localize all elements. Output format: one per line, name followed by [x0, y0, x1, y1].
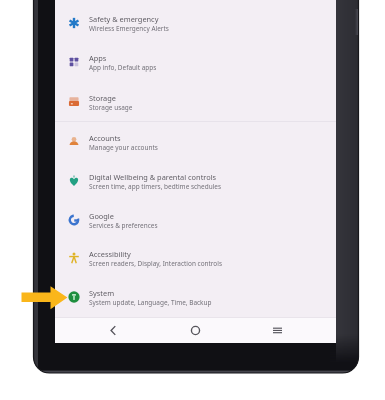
- staticText: Safety & emergency: [89, 14, 159, 24]
- staticText: App info, Default apps: [89, 63, 157, 72]
- staticText: Apps: [89, 53, 107, 63]
- staticText: System: [89, 288, 115, 298]
- staticText: Wireless Emergency Alerts: [89, 24, 169, 33]
- button[interactable]: Apps: [55, 43, 336, 82]
- staticText: Services & preferences: [89, 221, 158, 230]
- staticText: Accounts: [89, 133, 121, 143]
- staticText: Google: [89, 211, 114, 221]
- button[interactable]: Accessibility: [55, 239, 336, 278]
- staticText: Storage: [89, 93, 116, 103]
- staticText: System update, Language, Time, Backup: [89, 298, 212, 307]
- staticText: Digital Wellbeing & parental controls: [89, 172, 217, 182]
- staticText: Accessibility: [89, 249, 131, 259]
- button[interactable]: System: [55, 278, 336, 317]
- button[interactable]: Back: [73, 317, 154, 343]
- staticText: Screen time, app timers, bedtime schedul…: [89, 182, 222, 191]
- button[interactable]: Digital Wellbeing & parental controls: [55, 162, 336, 201]
- button[interactable]: Safety & emergency: [55, 4, 336, 43]
- button[interactable]: Recent apps: [236, 317, 318, 343]
- staticText: Manage your accounts: [89, 143, 158, 152]
- button[interactable]: Google: [55, 201, 336, 240]
- staticText: Screen readers, Display, Interaction con…: [89, 259, 223, 268]
- button[interactable]: Storage: [55, 83, 336, 122]
- button[interactable]: Home: [154, 317, 236, 343]
- button[interactable]: Accounts: [55, 123, 336, 162]
- staticText: Storage usage: [89, 103, 133, 112]
